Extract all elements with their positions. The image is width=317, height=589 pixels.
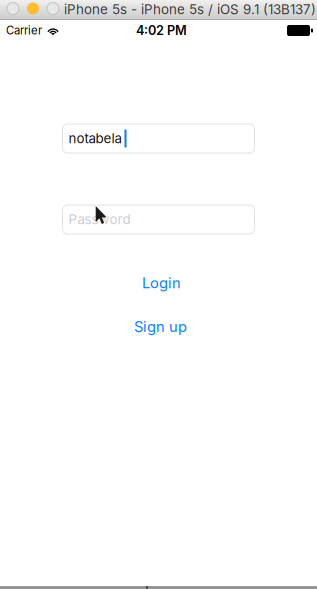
staticText: iPhone 5s - iPhone 5s / iOS 9.1 (13B137) — [64, 1, 316, 17]
staticText: notabela — [68, 130, 121, 146]
button[interactable]: Close — [7, 2, 19, 14]
staticText: Carrier — [6, 24, 42, 37]
staticText: Sign up — [134, 318, 187, 335]
staticText: 4:02 PM — [136, 23, 187, 38]
staticText: Login — [142, 274, 181, 292]
staticText: Password — [68, 211, 130, 227]
button[interactable]: Login — [142, 274, 181, 292]
button[interactable]: Sign up — [134, 318, 187, 335]
button[interactable]: Zoom — [47, 2, 59, 14]
button[interactable]: Minimize — [27, 2, 39, 14]
